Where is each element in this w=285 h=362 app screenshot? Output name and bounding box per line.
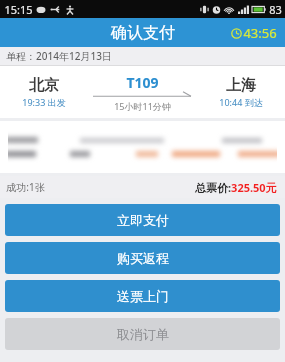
- staticText: 送票上门: [117, 288, 169, 304]
- staticText: 15:15: [4, 2, 33, 17]
- staticText: 43:56: [243, 24, 277, 42]
- staticText: 立即支付: [117, 212, 169, 228]
- staticText: 上海: [226, 76, 256, 95]
- staticText: 83: [269, 2, 282, 17]
- staticText: 19:33 出发: [22, 96, 66, 108]
- button[interactable]: 立即支付: [5, 204, 280, 236]
- staticText: 确认支付: [111, 23, 175, 43]
- staticText: 成功:1张: [6, 180, 45, 194]
- button[interactable]: 倒计时: [231, 24, 277, 42]
- button[interactable]: 取消订单: [5, 318, 280, 350]
- button[interactable]: 送票上门: [5, 280, 280, 312]
- button[interactable]: 购买返程: [5, 242, 280, 274]
- button[interactable]: [0, 121, 285, 173]
- staticText: 取消订单: [117, 326, 169, 342]
- staticText: 购买返程: [117, 250, 169, 266]
- staticText: 10:44 到达: [219, 96, 263, 108]
- staticText: 北京: [29, 76, 59, 95]
- staticText: 单程：2014年12月13日: [6, 49, 112, 63]
- staticText: T109: [126, 73, 159, 92]
- staticText: 总票价:325.50元: [195, 180, 277, 195]
- staticText: 15小时11分钟: [114, 100, 171, 112]
